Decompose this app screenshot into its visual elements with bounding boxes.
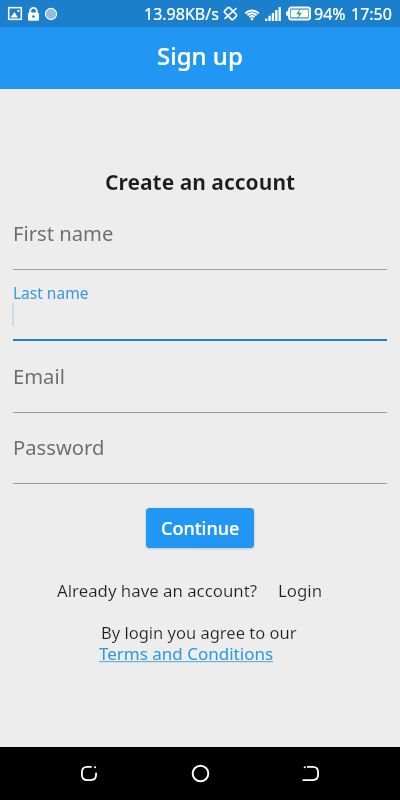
button[interactable]: Terms and Conditions (99, 642, 274, 665)
staticText: 94% (314, 3, 346, 25)
staticText: Password (13, 433, 105, 461)
button[interactable]: First name (0, 0, 400, 270)
staticText: First name (13, 219, 114, 247)
button[interactable]: Recent apps (276, 747, 346, 800)
button[interactable]: Last name (0, 0, 400, 342)
button[interactable]: Email (0, 0, 400, 413)
staticText: Terms and Conditions (99, 642, 274, 665)
staticText: Email (13, 362, 65, 390)
staticText: Last name (13, 282, 89, 303)
button[interactable]: Login (278, 579, 323, 602)
staticText: 17:50 (351, 3, 392, 25)
button[interactable]: Password (0, 0, 400, 484)
staticText: Sign up (157, 39, 243, 72)
button[interactable]: Back (54, 747, 124, 800)
staticText: Already have an account? (57, 579, 257, 602)
button[interactable]: Home (165, 747, 235, 800)
staticText: By login you agree to our (101, 621, 297, 643)
staticText: Continue (161, 516, 240, 541)
staticText: Login (278, 579, 323, 602)
button[interactable]: Continue (146, 508, 254, 548)
staticText: Create an account (105, 168, 296, 197)
staticText: 13.98KB/s (144, 3, 219, 25)
